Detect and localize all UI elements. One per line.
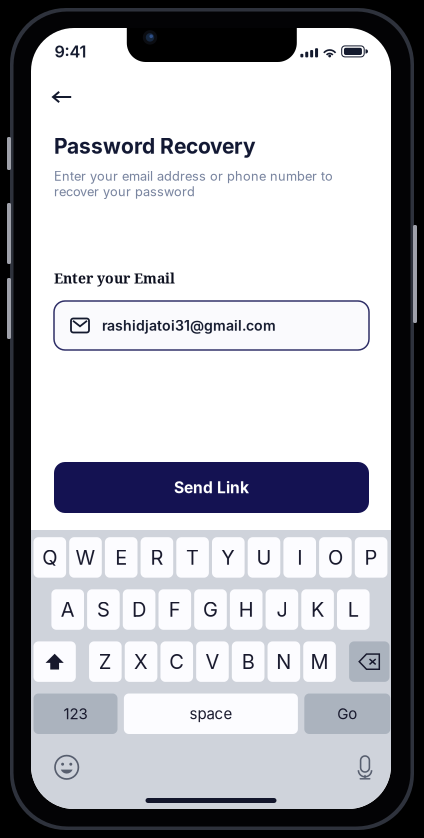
staticText: 9:41 <box>54 42 86 61</box>
button[interactable]: Delete <box>349 641 389 682</box>
button[interactable]: N <box>268 641 300 682</box>
button[interactable]: X <box>125 641 157 682</box>
staticText: F <box>169 597 181 622</box>
button[interactable]: E <box>105 537 137 578</box>
button[interactable]: T <box>176 537 209 578</box>
staticText: Q <box>42 545 57 570</box>
button[interactable]: O <box>319 537 352 578</box>
staticText: G <box>203 597 218 622</box>
staticText: X <box>134 650 148 674</box>
staticText: N <box>276 650 291 674</box>
staticText: H <box>239 597 254 622</box>
button[interactable]: Back <box>43 82 81 112</box>
button[interactable]: A <box>51 589 84 630</box>
staticText: Enter your Email <box>54 268 175 288</box>
staticText: B <box>242 650 255 674</box>
staticText: L <box>348 597 359 622</box>
staticText: A <box>61 597 75 622</box>
staticText: U <box>256 545 271 570</box>
staticText: T <box>186 545 199 570</box>
staticText: S <box>97 597 110 622</box>
staticText: D <box>132 597 146 622</box>
button[interactable]: P <box>355 537 387 578</box>
button[interactable]: M <box>303 641 336 682</box>
staticText: J <box>276 597 287 622</box>
button[interactable]: Y <box>212 537 245 578</box>
staticText: space <box>189 705 232 723</box>
button[interactable]: S <box>87 589 120 630</box>
button[interactable]: F <box>158 589 191 630</box>
staticText: Y <box>221 545 235 570</box>
button[interactable]: J <box>266 589 298 630</box>
staticText: P <box>365 545 378 570</box>
staticText: Password Recovery <box>54 133 256 159</box>
button[interactable]: D <box>123 589 155 630</box>
button[interactable]: W <box>69 537 102 578</box>
button[interactable]: R <box>141 537 173 578</box>
button[interactable]: Q <box>33 537 66 578</box>
button[interactable]: C <box>160 641 193 682</box>
staticText: C <box>169 650 184 674</box>
button[interactable]: H <box>230 589 262 630</box>
staticText: Go <box>337 705 357 723</box>
staticText: Enter your email address or phone number… <box>54 168 333 199</box>
staticText: Send Link <box>174 478 249 497</box>
staticText: 123 <box>63 705 87 723</box>
staticText: K <box>311 597 324 622</box>
button[interactable]: Send Link <box>54 462 369 513</box>
staticText: I <box>297 545 302 570</box>
button[interactable]: G <box>194 589 227 630</box>
button[interactable]: U <box>248 537 280 578</box>
staticText: W <box>75 545 95 570</box>
button[interactable]: 123 <box>33 693 117 734</box>
staticText: Z <box>99 650 112 674</box>
button[interactable]: Shift <box>33 641 76 682</box>
button[interactable]: Go <box>304 693 390 734</box>
button[interactable]: Dictation <box>344 751 386 785</box>
button[interactable]: V <box>196 641 229 682</box>
staticText: R <box>150 545 163 570</box>
staticText: O <box>328 545 343 570</box>
button[interactable]: Emoji keyboard <box>46 751 88 785</box>
button[interactable]: B <box>232 641 264 682</box>
button[interactable]: I <box>283 537 316 578</box>
button[interactable]: K <box>301 589 334 630</box>
button[interactable]: space <box>124 693 298 734</box>
staticText: V <box>205 650 219 674</box>
staticText: M <box>311 650 329 674</box>
staticText: rashidjatoi31@gmail.com <box>102 317 276 334</box>
button[interactable]: Z <box>89 641 122 682</box>
button[interactable]: L <box>337 589 370 630</box>
staticText: E <box>115 545 127 570</box>
